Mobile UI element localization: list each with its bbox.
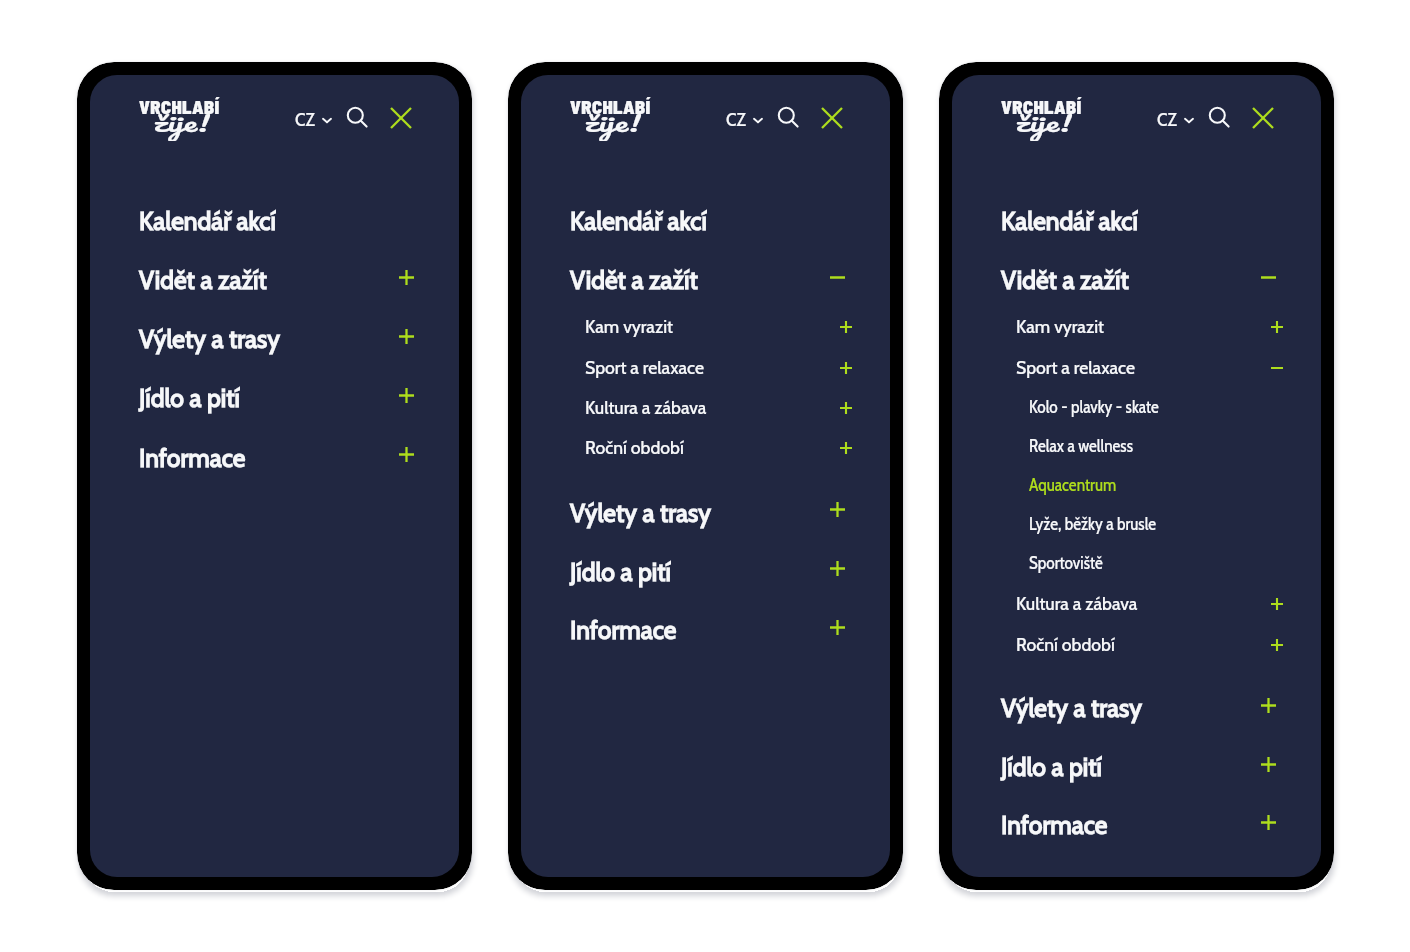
button[interactable] [90,378,459,417]
button[interactable] [952,587,1321,621]
button[interactable] [90,437,459,476]
button[interactable] [952,805,1321,844]
staticText: Vidět a zažít [570,265,698,295]
staticText: Výlety a trasy [570,498,711,528]
staticText: Vidět a zažít [1001,265,1129,295]
button[interactable] [90,201,459,240]
staticText: Vidět a zažít [139,265,267,295]
staticText: Kam vyrazit [1016,316,1105,337]
staticText: Roční období [585,437,684,458]
staticText: Informace [1001,810,1108,840]
button[interactable]: Search [342,102,374,134]
button[interactable] [952,627,1321,661]
staticText: Lyže, běžky a brusle [1029,514,1156,535]
staticText: Výlety a trasy [1001,693,1142,723]
button[interactable] [952,201,1321,240]
button[interactable]: Search [1204,102,1236,134]
button[interactable] [952,389,1321,423]
staticText: Kolo - plavky - skate [1029,397,1159,418]
button[interactable] [521,350,890,384]
button[interactable]: Vrchlabí žije! home [1001,98,1121,148]
staticText: žije! [1015,103,1072,141]
staticText: Jídlo a pití [1001,752,1102,782]
button[interactable] [952,350,1321,384]
button[interactable]: Vrchlabí žije! home [570,98,690,148]
staticText: Sportoviště [1029,553,1103,574]
button[interactable] [521,201,890,240]
button[interactable]: Search [773,102,805,134]
staticText: Kalendář akcí [1001,206,1138,236]
staticText: CZ [1157,110,1177,131]
button[interactable] [952,309,1321,343]
button[interactable] [521,492,890,531]
staticText: Kalendář akcí [570,206,707,236]
staticText: Roční období [1016,634,1115,655]
staticText: VRCHLABÍ [139,95,220,117]
button[interactable] [952,687,1321,726]
button[interactable]: CZ [1157,105,1194,135]
button[interactable] [90,260,459,299]
button[interactable]: Close menu [385,102,417,134]
button[interactable] [952,746,1321,785]
staticText: Aquacentrum [1029,475,1116,496]
staticText: Informace [139,443,246,473]
button[interactable] [952,260,1321,299]
button[interactable]: CZ [726,105,763,135]
staticText: CZ [726,110,746,131]
button[interactable]: Vrchlabí žije! home [139,98,259,148]
button[interactable] [521,390,890,424]
button[interactable] [90,319,459,358]
staticText: Kam vyrazit [585,316,674,337]
button[interactable] [521,309,890,343]
button[interactable] [952,544,1321,578]
staticText: Sport a relaxace [1016,357,1135,378]
button[interactable]: CZ [295,105,332,135]
button[interactable] [521,260,890,299]
staticText: CZ [295,110,315,131]
staticText: Informace [570,615,677,645]
staticText: Výlety a trasy [139,324,280,354]
button[interactable] [952,428,1321,462]
staticText: Relax a wellness [1029,436,1133,457]
button[interactable]: Close menu [816,102,848,134]
staticText: VRCHLABÍ [1001,95,1082,117]
staticText: Kultura a zábava [1016,593,1138,614]
button[interactable] [521,610,890,649]
button[interactable]: Close menu [1247,102,1279,134]
staticText: žije! [584,103,641,141]
button[interactable] [521,431,890,465]
staticText: Kalendář akcí [139,206,276,236]
staticText: VRCHLABÍ [570,95,651,117]
staticText: Jídlo a pití [139,383,240,413]
button[interactable] [952,505,1321,539]
staticText: Sport a relaxace [585,357,704,378]
button[interactable] [952,467,1321,501]
button[interactable] [521,551,890,590]
staticText: žije! [153,103,210,141]
staticText: Kultura a zábava [585,397,707,418]
staticText: Jídlo a pití [570,557,671,587]
